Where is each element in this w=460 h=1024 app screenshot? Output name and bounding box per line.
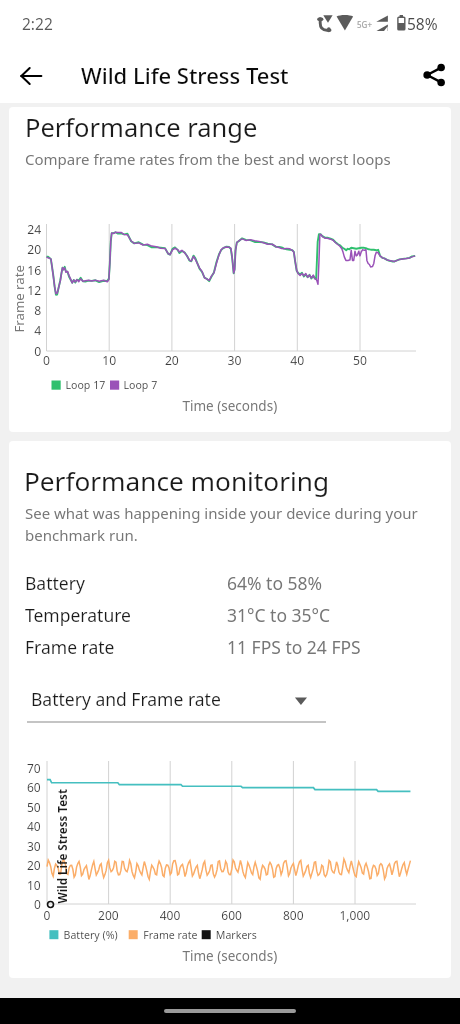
staticText: Battery and Frame rate <box>31 687 221 711</box>
staticText: 64% to 58% <box>227 571 323 595</box>
staticText: Performance range <box>25 110 258 145</box>
staticText: Performance monitoring <box>24 463 330 499</box>
staticText: 2:22 <box>22 13 53 34</box>
staticText: Compare frame rates from the best and wo… <box>25 149 391 169</box>
button[interactable]: Back <box>11 56 51 96</box>
staticText: Battery <box>25 571 85 595</box>
staticText: 11 FPS to 24 FPS <box>227 635 361 659</box>
staticText: See what was happening inside your devic… <box>25 503 421 546</box>
staticText: 58% <box>407 13 438 34</box>
staticText: Frame rate <box>25 635 115 659</box>
button[interactable]: Share <box>414 55 454 95</box>
staticText: Temperature <box>25 603 131 627</box>
staticText: Wild Life Stress Test <box>81 60 289 90</box>
staticText: 5G+ <box>357 19 372 30</box>
button[interactable]: Battery and Frame rate <box>27 677 326 723</box>
staticText: 31°C to 35°C <box>227 603 331 627</box>
